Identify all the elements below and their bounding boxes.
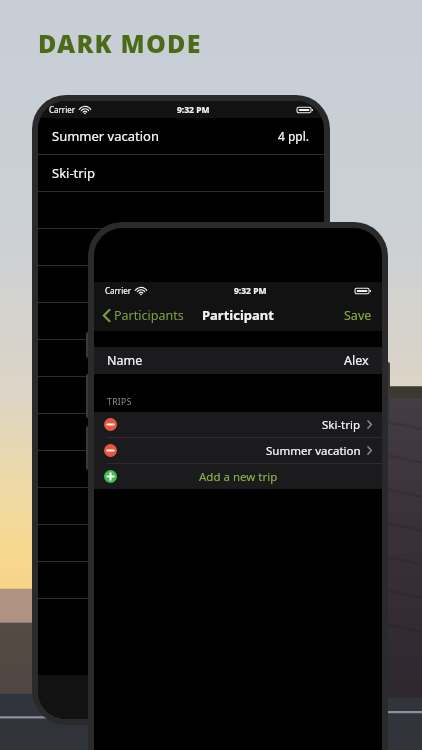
button[interactable]: Add a new trip: [94, 464, 382, 489]
button[interactable]: Summer vacation: [38, 118, 324, 154]
button[interactable]: Remove Summer vacation: [104, 444, 117, 457]
staticText: Carrier: [105, 285, 132, 296]
button[interactable]: Remove Ski-trip: [94, 412, 382, 437]
staticText: 9:32 PM: [234, 285, 267, 297]
button[interactable]: Remove Ski-trip: [104, 418, 117, 431]
button[interactable]: Save: [334, 302, 382, 329]
staticText: Carrier: [49, 104, 76, 115]
staticText: Summer vacation: [266, 443, 361, 459]
button[interactable]: Ski-trip: [38, 155, 324, 191]
staticText: Ski-trip: [322, 417, 361, 433]
staticText: Save: [344, 307, 372, 324]
staticText: Name: [107, 352, 143, 369]
staticText: Summer vacation: [52, 127, 159, 145]
staticText: Add a new trip: [199, 469, 278, 485]
button[interactable]: Name: [94, 347, 382, 374]
staticText: DARK MODE: [38, 26, 202, 60]
button[interactable]: Remove Summer vacation: [94, 438, 382, 463]
staticText: Participants: [114, 307, 184, 324]
staticText: 4 ppl.: [278, 128, 310, 144]
button[interactable]: Participants: [94, 303, 192, 328]
staticText: Alex: [344, 352, 369, 369]
staticText: TRIPS: [107, 396, 132, 408]
staticText: Ski-trip: [52, 164, 96, 182]
staticText: 9:32 PM: [177, 104, 210, 116]
staticText: Participant: [202, 306, 274, 324]
